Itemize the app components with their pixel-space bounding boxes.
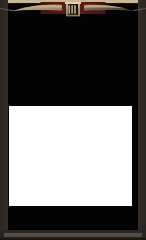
button[interactable]: Crest emblem bbox=[8, 2, 138, 22]
